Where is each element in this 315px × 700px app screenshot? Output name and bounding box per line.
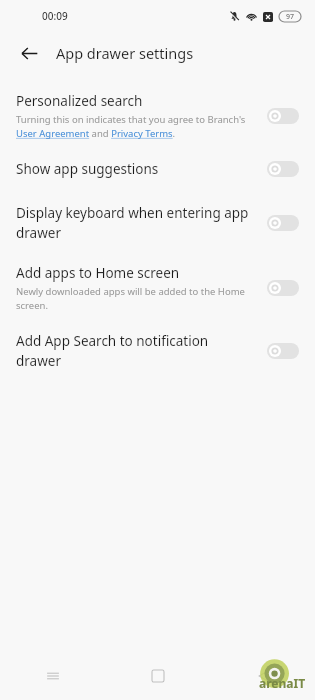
staticText: 00:09: [42, 9, 68, 23]
staticText: Newly downloaded apps will be added to t…: [16, 285, 253, 312]
staticText: Turning this on indicates that you agree…: [16, 113, 253, 140]
staticText: Show app suggestions: [16, 160, 159, 178]
staticText: App drawer settings: [56, 43, 194, 63]
button[interactable]: Toggle off: [267, 215, 299, 231]
staticText: 97: [286, 12, 295, 22]
button[interactable]: Home: [105, 652, 210, 700]
button[interactable]: Toggle off: [267, 108, 299, 124]
staticText: arenaIT: [259, 675, 306, 691]
button[interactable]: Toggle off: [267, 280, 299, 296]
button[interactable]: Toggle off: [267, 343, 299, 359]
button[interactable]: Add apps to Home screen: [0, 254, 315, 320]
staticText: Display keyboard when entering app drawe…: [16, 204, 253, 242]
button[interactable]: Toggle off: [267, 161, 299, 177]
button[interactable]: Back: [16, 40, 42, 66]
staticText: Add App Search to notification drawer: [16, 332, 253, 370]
button[interactable]: Recent apps: [0, 652, 105, 700]
button[interactable]: Display keyboard when entering app drawe…: [0, 192, 315, 254]
button[interactable]: Personalized search: [0, 86, 315, 146]
button[interactable]: Show app suggestions: [0, 146, 315, 192]
staticText: Add apps to Home screen: [16, 264, 180, 282]
button[interactable]: Add App Search to notification drawer: [0, 320, 315, 382]
staticText: Personalized search: [16, 92, 143, 110]
button[interactable]: Back: [210, 652, 315, 700]
